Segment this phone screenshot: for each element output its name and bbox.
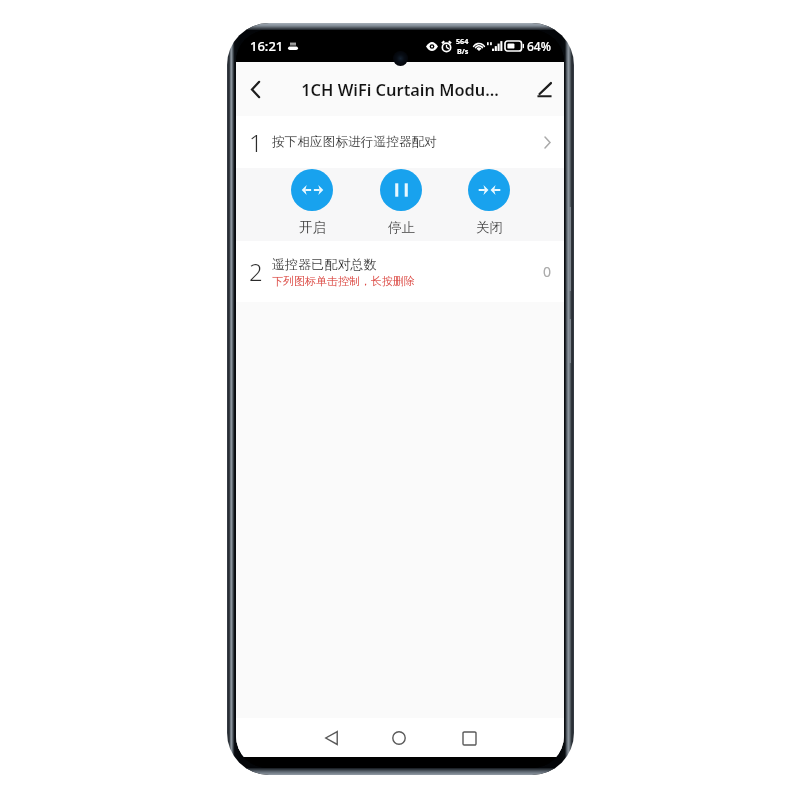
staticText: 64%	[527, 38, 551, 54]
staticText: 564	[456, 36, 469, 46]
staticText: 关闭	[476, 219, 503, 236]
staticText: 1CH WiFi Curtain Modu...	[301, 78, 499, 100]
staticText: B/s	[457, 46, 469, 56]
button[interactable]: 开启	[291, 168, 333, 236]
button[interactable]: Home	[382, 721, 416, 755]
staticText: 1	[249, 126, 263, 159]
staticText: 0	[543, 262, 552, 281]
staticText: 16:21	[250, 37, 284, 55]
button[interactable]: Recents	[452, 721, 486, 755]
staticText: 遥控器已配对总数	[272, 256, 377, 273]
button[interactable]: 2	[236, 241, 564, 302]
button[interactable]: 关闭	[468, 168, 510, 236]
staticText: 2	[249, 255, 263, 288]
button[interactable]: Edit	[525, 62, 564, 116]
staticText: 开启	[299, 219, 326, 236]
staticText: 下列图标单击控制，长按删除	[272, 274, 415, 288]
button[interactable]: Back	[236, 62, 274, 116]
button[interactable]: 1	[236, 116, 564, 168]
staticText: 停止	[388, 219, 415, 236]
button[interactable]: 停止	[380, 168, 422, 236]
staticText: 按下相应图标进行遥控器配对	[272, 134, 437, 150]
button[interactable]: Back	[314, 721, 348, 755]
